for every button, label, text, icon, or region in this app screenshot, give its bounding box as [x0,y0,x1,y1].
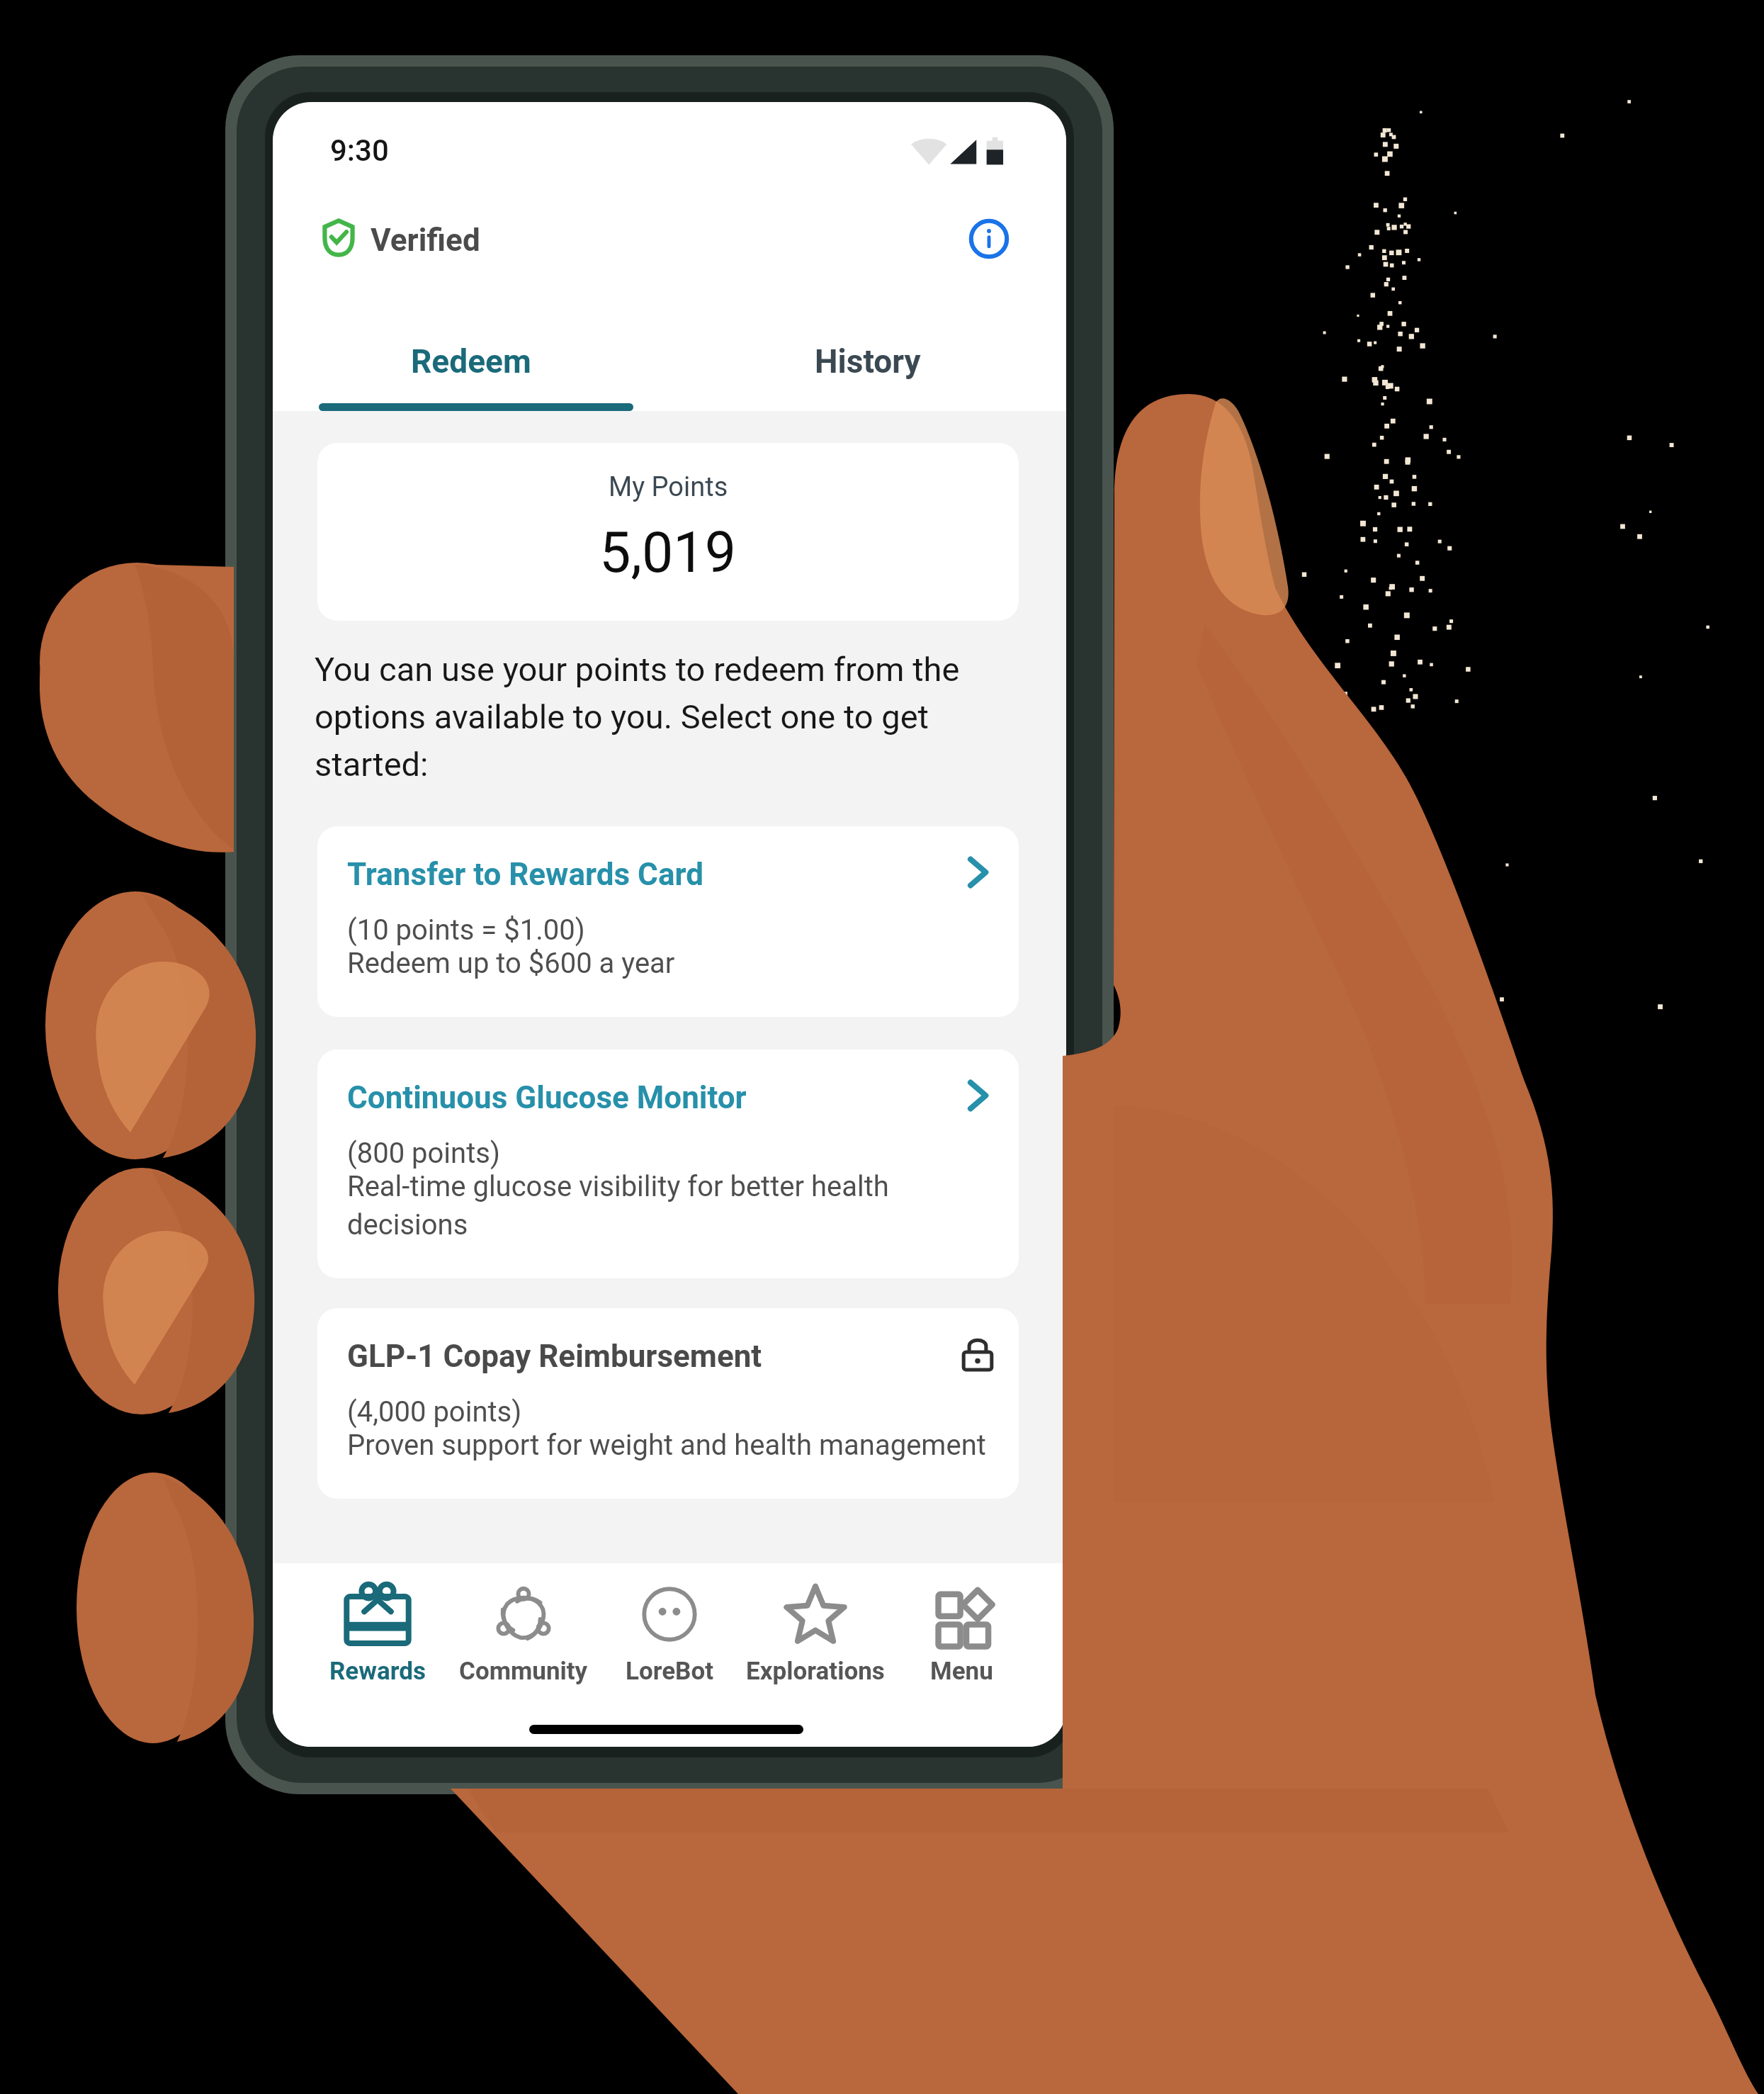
button[interactable]: Continuous Glucose Monitor [317,1049,1019,1278]
staticText: Continuous Glucose Monitor [347,1079,747,1116]
staticText: (4,000 points) [347,1395,522,1429]
staticText: 9:30 [330,133,389,168]
button[interactable]: Menu [888,1581,1034,1747]
staticText: Real-time glucose visibility for better … [347,1170,1003,1242]
staticText: LoreBot [626,1657,714,1686]
button[interactable]: Transfer to Rewards Card [317,826,1019,1017]
staticText: GLP-1 Copay Reimbursement [347,1338,762,1375]
button[interactable]: LoreBot [597,1581,742,1747]
button[interactable]: GLP-1 Copay Reimbursement [317,1308,1019,1499]
staticText: Verified [371,222,480,259]
staticText: Transfer to Rewards Card [347,856,703,893]
staticText: Proven support for weight and health man… [347,1429,986,1462]
button[interactable]: Information [968,218,1010,259]
staticText: Community [459,1657,588,1686]
staticText: Redeem [411,342,531,381]
staticText: You can use your points to redeem from t… [315,650,1023,784]
staticText: Redeem up to $600 a year [347,947,675,980]
button[interactable]: Rewards [305,1581,451,1747]
staticText: Rewards [329,1657,426,1686]
button[interactable]: Verified [322,218,480,257]
staticText: History [815,342,921,381]
button[interactable]: Explorations [742,1581,888,1747]
staticText: Menu [930,1657,993,1686]
staticText: My Points [609,471,728,503]
staticText: 5,019 [599,520,737,586]
button[interactable]: Redeem [273,258,669,411]
staticText: Explorations [746,1657,885,1686]
button[interactable]: Community [451,1581,597,1747]
staticText: (800 points) [347,1137,500,1170]
staticText: (10 points = $1.00) [347,913,585,947]
button[interactable]: History [669,258,1066,411]
